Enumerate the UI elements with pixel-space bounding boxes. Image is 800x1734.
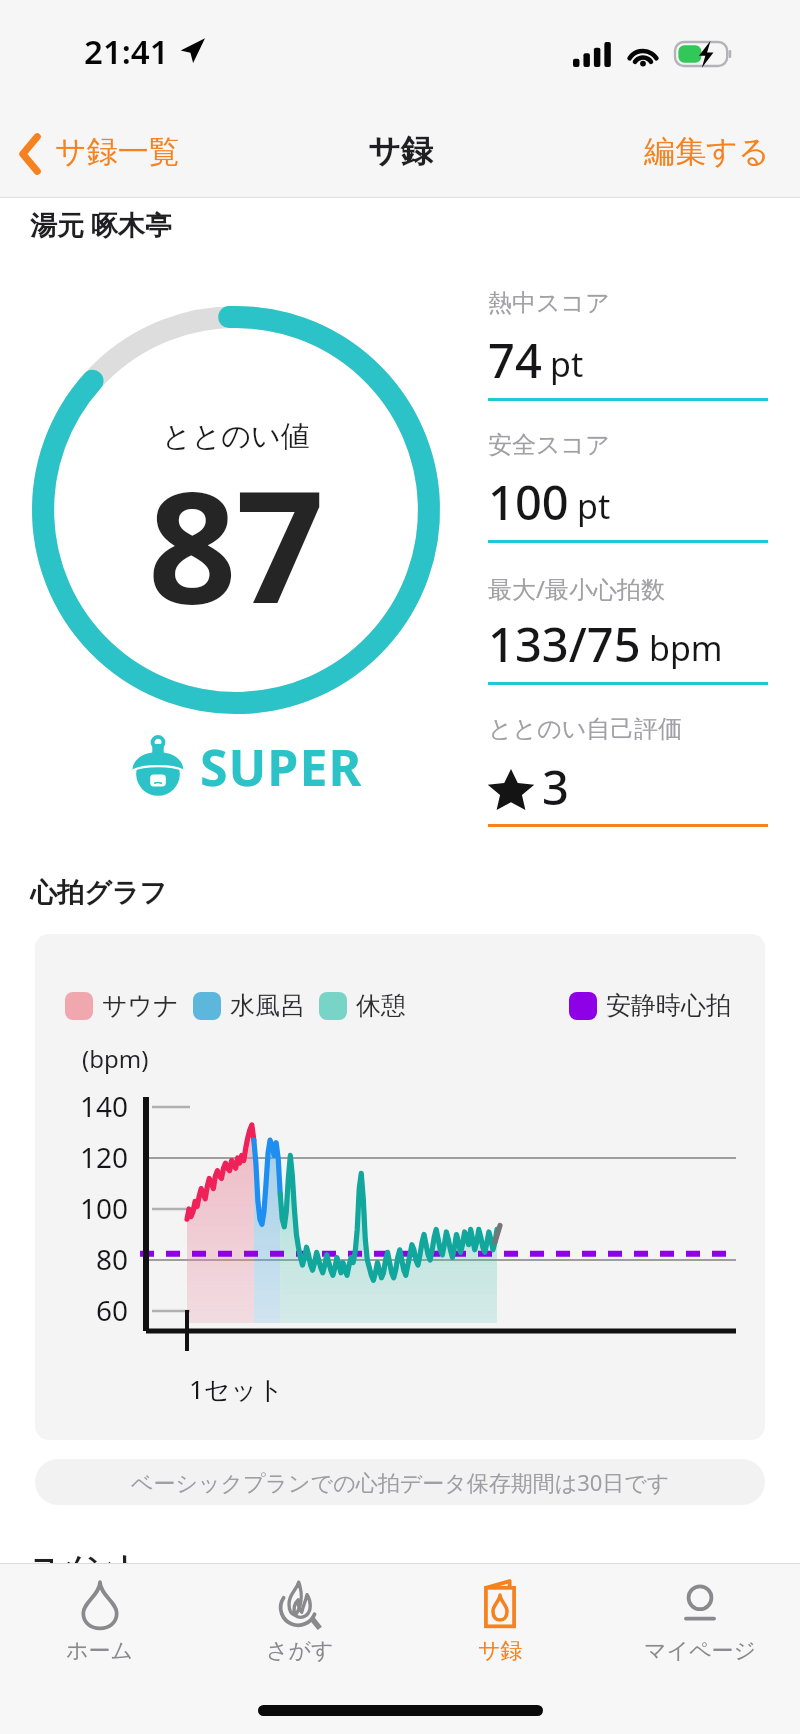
button[interactable]: Home <box>0 1576 200 1686</box>
staticText: SUPER <box>200 733 363 801</box>
staticText: 休憩 <box>356 990 406 1021</box>
staticText: 87 <box>148 437 324 648</box>
staticText: サウナ <box>102 990 179 1021</box>
staticText: さがす <box>266 1637 334 1665</box>
staticText: 100 <box>488 470 569 534</box>
staticText: マイページ <box>644 1637 757 1665</box>
staticText: 21:41 <box>84 29 169 74</box>
staticText: 湯元 啄木亭 <box>30 206 173 243</box>
staticText: ホーム <box>66 1637 134 1665</box>
staticText: 80 <box>35 1240 128 1278</box>
staticText: 心拍グラフ <box>30 876 167 910</box>
staticText: ととのい値 <box>162 418 310 455</box>
staticText: ベーシックプランでの心拍データ保存期間は30日です <box>131 1467 670 1497</box>
staticText: 133/75 <box>488 612 641 676</box>
staticText: コメント <box>30 1550 141 1584</box>
button[interactable]: Search <box>200 1576 400 1686</box>
staticText: 74 <box>488 328 542 392</box>
staticText: 最大/最小心拍数 <box>488 572 665 605</box>
staticText: 60 <box>35 1291 128 1329</box>
button[interactable]: My page <box>600 1576 800 1686</box>
staticText: 3 <box>542 755 569 819</box>
staticText: 安静時心拍 <box>606 990 731 1021</box>
staticText: サ録 <box>368 131 433 171</box>
staticText: 120 <box>35 1138 128 1176</box>
staticText: サ録一覧 <box>55 132 180 171</box>
button[interactable]: Records <box>400 1576 600 1686</box>
staticText: 100 <box>35 1189 128 1227</box>
staticText: ととのい自己評価 <box>488 714 683 744</box>
staticText: pt <box>550 341 584 387</box>
button[interactable]: サ録一覧 <box>0 131 190 171</box>
staticText: サ録 <box>478 1637 523 1665</box>
staticText: pt <box>577 483 611 529</box>
staticText: 熱中スコア <box>488 288 610 318</box>
staticText: 水風呂 <box>230 990 305 1021</box>
staticText: 1セット <box>189 1371 284 1407</box>
staticText: 安全スコア <box>488 430 610 460</box>
staticText: bpm <box>649 625 723 671</box>
button[interactable]: 編集する <box>644 132 800 171</box>
staticText: (bpm) <box>82 1042 149 1075</box>
staticText: 140 <box>35 1087 128 1125</box>
